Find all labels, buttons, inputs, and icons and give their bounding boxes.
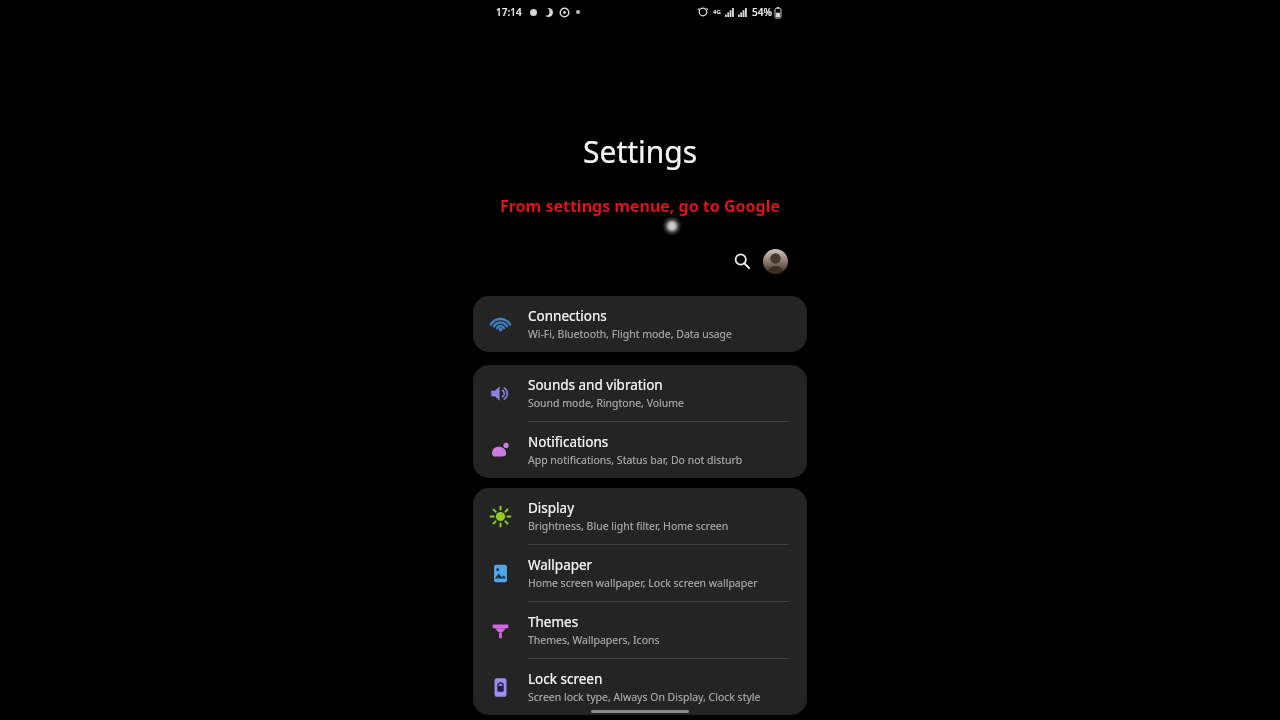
button[interactable]: Display [473,488,807,544]
staticText: 17:14 [496,5,522,19]
staticText: Notifications [528,433,609,451]
staticText: 4G [713,8,721,16]
staticText: Themes, Wallpapers, Icons [528,633,660,647]
staticText: Brightness, Blue light filter, Home scre… [528,519,729,533]
staticText: From settings menue, go to Google [500,195,780,217]
staticText: Settings [583,131,698,172]
button[interactable]: Wallpaper [473,545,807,601]
staticText: App notifications, Status bar, Do not di… [528,453,743,467]
button[interactable]: Sounds and vibration [473,365,807,421]
button[interactable]: Search [729,248,755,274]
button[interactable]: Account [763,249,788,274]
staticText: Themes [528,613,579,631]
staticText: Sounds and vibration [528,376,663,394]
staticText: Display [528,499,575,517]
button[interactable]: Connections [473,296,807,352]
button[interactable]: Themes [473,602,807,658]
button[interactable]: Notifications [473,422,807,478]
staticText: Lock screen [528,670,603,688]
staticText: Sound mode, Ringtone, Volume [528,396,685,410]
staticText: 54% [752,5,772,19]
staticText: Home screen wallpaper, Lock screen wallp… [528,576,758,590]
staticText: Wallpaper [528,556,593,574]
staticText: Screen lock type, Always On Display, Clo… [528,690,761,704]
staticText: Connections [528,307,607,325]
staticText: Wi-Fi, Bluetooth, Flight mode, Data usag… [528,327,733,341]
button[interactable]: Lock screen [473,659,807,715]
